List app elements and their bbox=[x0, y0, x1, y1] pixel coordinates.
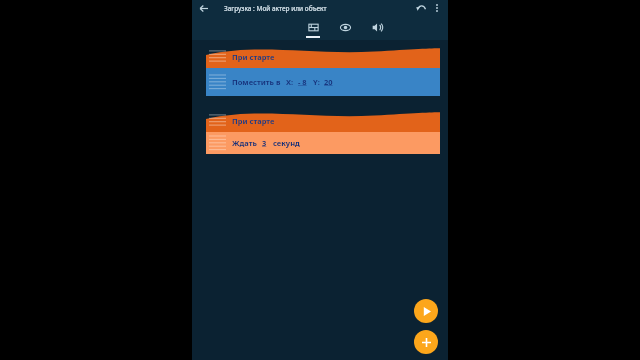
button[interactable]: 3 bbox=[262, 138, 267, 148]
staticText: секунд bbox=[273, 138, 300, 148]
staticText: X: bbox=[286, 77, 294, 87]
button[interactable]: Blocks bbox=[302, 19, 324, 38]
button[interactable]: - 8 bbox=[298, 77, 307, 87]
button[interactable]: Back bbox=[196, 1, 210, 15]
button[interactable]: Stage bbox=[334, 19, 356, 38]
staticText: Ждать bbox=[232, 138, 257, 148]
staticText: При старте bbox=[232, 52, 275, 62]
button[interactable]: Add bbox=[414, 330, 438, 354]
button[interactable]: Ждать bbox=[192, 132, 448, 154]
button[interactable]: Run bbox=[414, 299, 438, 323]
staticText: Загрузка : Мой актер или объект bbox=[224, 4, 327, 13]
staticText: Y: bbox=[313, 77, 320, 87]
button[interactable]: 20 bbox=[324, 77, 333, 87]
button[interactable]: Поместить в bbox=[192, 68, 448, 96]
button[interactable]: Sound bbox=[366, 19, 388, 38]
button[interactable]: Undo bbox=[414, 1, 428, 15]
button[interactable]: При старте bbox=[192, 110, 448, 132]
button[interactable]: More options bbox=[430, 1, 444, 15]
staticText: Поместить в bbox=[232, 77, 281, 87]
button[interactable]: При старте bbox=[192, 46, 448, 68]
staticText: При старте bbox=[232, 116, 275, 126]
